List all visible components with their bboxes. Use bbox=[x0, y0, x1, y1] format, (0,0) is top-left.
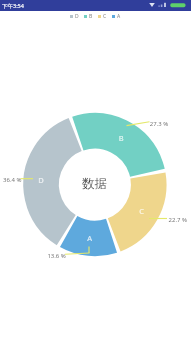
other: Status icons bbox=[149, 2, 187, 8]
button[interactable]: D bbox=[70, 13, 79, 20]
button[interactable]: B bbox=[84, 13, 93, 20]
button[interactable]: A bbox=[112, 13, 121, 20]
staticText: B bbox=[89, 13, 93, 20]
button[interactable]: C bbox=[98, 13, 107, 20]
staticText: D bbox=[75, 13, 79, 20]
staticText: 下午3:54 bbox=[2, 2, 24, 10]
staticText: C bbox=[103, 13, 107, 20]
staticText: A bbox=[117, 13, 121, 20]
